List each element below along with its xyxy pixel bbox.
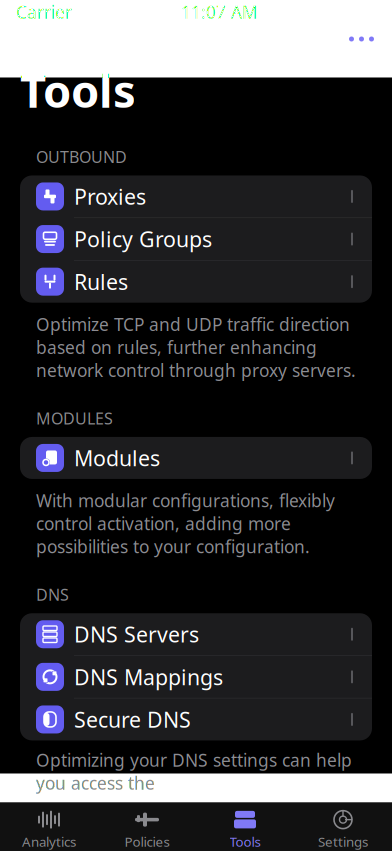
staticText: DNS Mappings xyxy=(74,663,223,691)
staticText: DNS xyxy=(36,584,69,605)
button[interactable]: Rules xyxy=(20,261,372,303)
button[interactable]: DNS Servers xyxy=(20,613,372,655)
staticText: Optimizing your DNS settings can help yo… xyxy=(36,748,352,794)
button[interactable]: Policies xyxy=(98,804,196,850)
staticText: OUTBOUND xyxy=(36,146,127,167)
staticText: Policies xyxy=(124,833,169,850)
staticText: Proxies xyxy=(74,182,146,211)
button[interactable]: Tools xyxy=(196,804,294,850)
button[interactable]: Settings xyxy=(294,804,392,850)
staticText: Carrier xyxy=(16,0,72,23)
button[interactable]: Modules xyxy=(20,437,372,479)
staticText: MODULES xyxy=(36,408,113,429)
staticText: Modules xyxy=(74,444,160,472)
button[interactable]: DNS Mappings xyxy=(20,656,372,698)
staticText: DNS Servers xyxy=(74,620,199,648)
button[interactable]: Policy Groups xyxy=(20,218,372,260)
button[interactable]: Analytics xyxy=(0,804,98,850)
button[interactable]: Secure DNS xyxy=(20,698,372,740)
staticText: Settings xyxy=(318,833,368,850)
staticText: Tools xyxy=(229,833,260,850)
button[interactable]: Proxies xyxy=(20,175,372,217)
staticText: Policy Groups xyxy=(74,225,212,253)
staticText: Optimize TCP and UDP traffic direction b… xyxy=(36,313,356,382)
staticText: 11:07 AM xyxy=(181,0,258,23)
button[interactable]: More options xyxy=(339,28,384,49)
staticText: With modular configurations, flexibly co… xyxy=(36,489,335,558)
staticText: Analytics xyxy=(22,833,76,850)
staticText: Rules xyxy=(74,267,128,296)
staticText: Tools xyxy=(20,60,136,120)
staticText: Secure DNS xyxy=(74,705,191,734)
